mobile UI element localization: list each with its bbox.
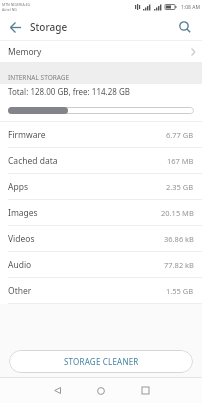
button[interactable] xyxy=(123,378,167,403)
button[interactable] xyxy=(0,14,30,40)
button[interactable]: Cached data xyxy=(0,148,202,174)
button[interactable]: Other xyxy=(0,278,202,304)
staticText: MTN NIGERIA 4G xyxy=(2,2,31,7)
staticText: Memory xyxy=(8,46,42,58)
staticText: 1:08 AM xyxy=(181,4,200,11)
button[interactable] xyxy=(168,14,202,40)
button[interactable]: Apps xyxy=(0,174,202,200)
button[interactable]: Audio xyxy=(0,252,202,278)
button[interactable]: Videos xyxy=(0,226,202,252)
button[interactable]: STORAGE CLEANER xyxy=(9,350,193,373)
button[interactable]: Images xyxy=(0,200,202,226)
staticText: Cached data xyxy=(8,155,58,167)
staticText: 36.86 kB xyxy=(164,234,194,244)
staticText: INTERNAL STORAGE xyxy=(8,73,70,82)
staticText: Storage xyxy=(30,20,68,34)
staticText: 77.82 kB xyxy=(164,260,194,270)
staticText: 6.77 GB xyxy=(166,130,194,140)
button[interactable] xyxy=(35,378,79,403)
staticText: STORAGE CLEANER xyxy=(64,356,139,367)
staticText: Videos xyxy=(8,233,35,245)
staticText: 20.15 MB xyxy=(161,208,194,218)
staticText: Airtel NG xyxy=(2,7,17,12)
button[interactable]: Memory xyxy=(0,41,202,62)
staticText: Total: 128.00 GB, free: 114.28 GB xyxy=(8,86,130,97)
staticText: 1.55 GB xyxy=(166,286,194,296)
staticText: Audio xyxy=(8,259,32,271)
button[interactable]: Firmware xyxy=(0,122,202,148)
button[interactable] xyxy=(79,378,123,403)
staticText: Images xyxy=(8,207,38,219)
staticText: Firmware xyxy=(8,129,46,141)
staticText: Other xyxy=(8,285,32,297)
staticText: 167 MB xyxy=(167,156,194,166)
staticText: Apps xyxy=(8,181,28,193)
staticText: 2.35 GB xyxy=(166,182,194,192)
